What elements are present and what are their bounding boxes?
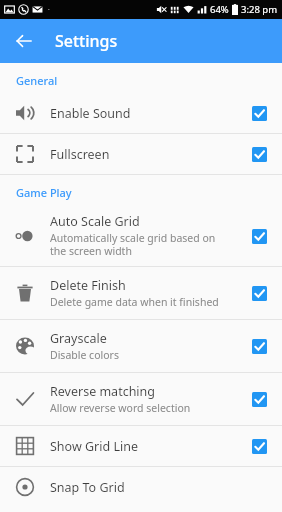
- staticText: Fullscreen: [50, 146, 110, 163]
- staticText: Game Play: [16, 185, 72, 200]
- staticText: 3:28 pm: [241, 3, 278, 16]
- button[interactable]: Toggle: [247, 334, 271, 358]
- staticText: Show Grid Line: [50, 438, 138, 455]
- button[interactable]: Fullscreen: [0, 134, 282, 174]
- staticText: Enable Sound: [50, 105, 131, 122]
- staticText: Snap To Grid: [50, 479, 125, 496]
- staticText: Settings: [55, 30, 118, 52]
- staticText: Reverse matching: [50, 383, 156, 400]
- staticText: Automatically scale grid based on the sc…: [50, 231, 228, 258]
- staticText: Delete game data when it finished: [50, 295, 219, 309]
- staticText: Disable colors: [50, 348, 119, 362]
- button[interactable]: Auto Scale Grid: [0, 205, 282, 266]
- button[interactable]: Toggle: [247, 281, 271, 305]
- button[interactable]: Toggle: [247, 142, 271, 166]
- button[interactable]: Toggle: [247, 387, 271, 411]
- button[interactable]: Back: [8, 25, 40, 57]
- staticText: Allow reverse word selection: [50, 401, 191, 415]
- button[interactable]: Reverse matching: [0, 373, 282, 425]
- staticText: General: [16, 73, 58, 88]
- staticText: Grayscale: [50, 330, 107, 347]
- button[interactable]: Snap To Grid: [0, 467, 282, 507]
- button[interactable]: Show Grid Line: [0, 426, 282, 466]
- staticText: Delete Finish: [50, 277, 126, 294]
- button[interactable]: Delete Finish: [0, 267, 282, 319]
- button[interactable]: Toggle: [247, 224, 271, 248]
- button[interactable]: Toggle: [247, 101, 271, 125]
- staticText: 64%: [210, 3, 229, 16]
- button[interactable]: Grayscale: [0, 320, 282, 372]
- staticText: Auto Scale Grid: [50, 213, 140, 230]
- button[interactable]: Toggle: [247, 434, 271, 458]
- button[interactable]: Enable Sound: [0, 93, 282, 133]
